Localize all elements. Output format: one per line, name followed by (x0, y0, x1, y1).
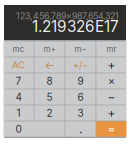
staticText: 3 (77, 107, 83, 119)
staticText: 2 (46, 107, 52, 119)
button[interactable]: . (65, 121, 95, 137)
button[interactable]: +/− (65, 57, 95, 73)
staticText: 7 (16, 75, 22, 87)
staticText: 6 (77, 91, 83, 103)
staticText: 5 (46, 91, 52, 103)
button[interactable]: 1 (3, 105, 34, 121)
staticText: 4 (16, 91, 22, 103)
staticText: − (107, 90, 115, 104)
button[interactable]: ← (34, 57, 65, 73)
button[interactable]: m+ (34, 41, 65, 57)
button[interactable]: 5 (34, 89, 65, 105)
button[interactable]: + (96, 105, 126, 121)
button[interactable]: AC (3, 57, 34, 73)
staticText: = (107, 122, 115, 136)
button[interactable]: 0 (3, 121, 65, 137)
staticText: m+ (43, 44, 55, 54)
staticText: +/− (73, 59, 88, 71)
staticText: . (79, 122, 82, 136)
staticText: × (108, 74, 115, 87)
staticText: mr (106, 44, 116, 54)
staticText: 8 (46, 75, 52, 87)
staticText: AC (12, 59, 25, 71)
button[interactable]: − (96, 89, 126, 105)
button[interactable]: 8 (34, 73, 65, 89)
button[interactable]: + (96, 57, 126, 73)
button[interactable]: 2 (34, 105, 65, 121)
staticText: 0 (16, 123, 22, 135)
button[interactable]: 4 (3, 89, 34, 105)
staticText: 1 (17, 107, 21, 119)
staticText: 1.219326E17 (32, 17, 119, 36)
staticText: m− (74, 44, 86, 54)
button[interactable]: mr (96, 41, 126, 57)
staticText: mc (13, 44, 25, 54)
button[interactable]: mc (3, 41, 34, 57)
button[interactable]: 9 (65, 73, 95, 89)
staticText: + (107, 58, 115, 72)
staticText: + (107, 106, 115, 120)
button[interactable]: m− (65, 41, 95, 57)
staticText: ← (44, 58, 54, 71)
button[interactable]: = (96, 121, 126, 137)
button[interactable]: 7 (3, 73, 34, 89)
button[interactable]: 6 (65, 89, 95, 105)
staticText: 123,456,789×987,654,321 (16, 11, 119, 21)
button[interactable]: 3 (65, 105, 95, 121)
staticText: 9 (77, 75, 83, 87)
button[interactable]: × (96, 73, 126, 89)
